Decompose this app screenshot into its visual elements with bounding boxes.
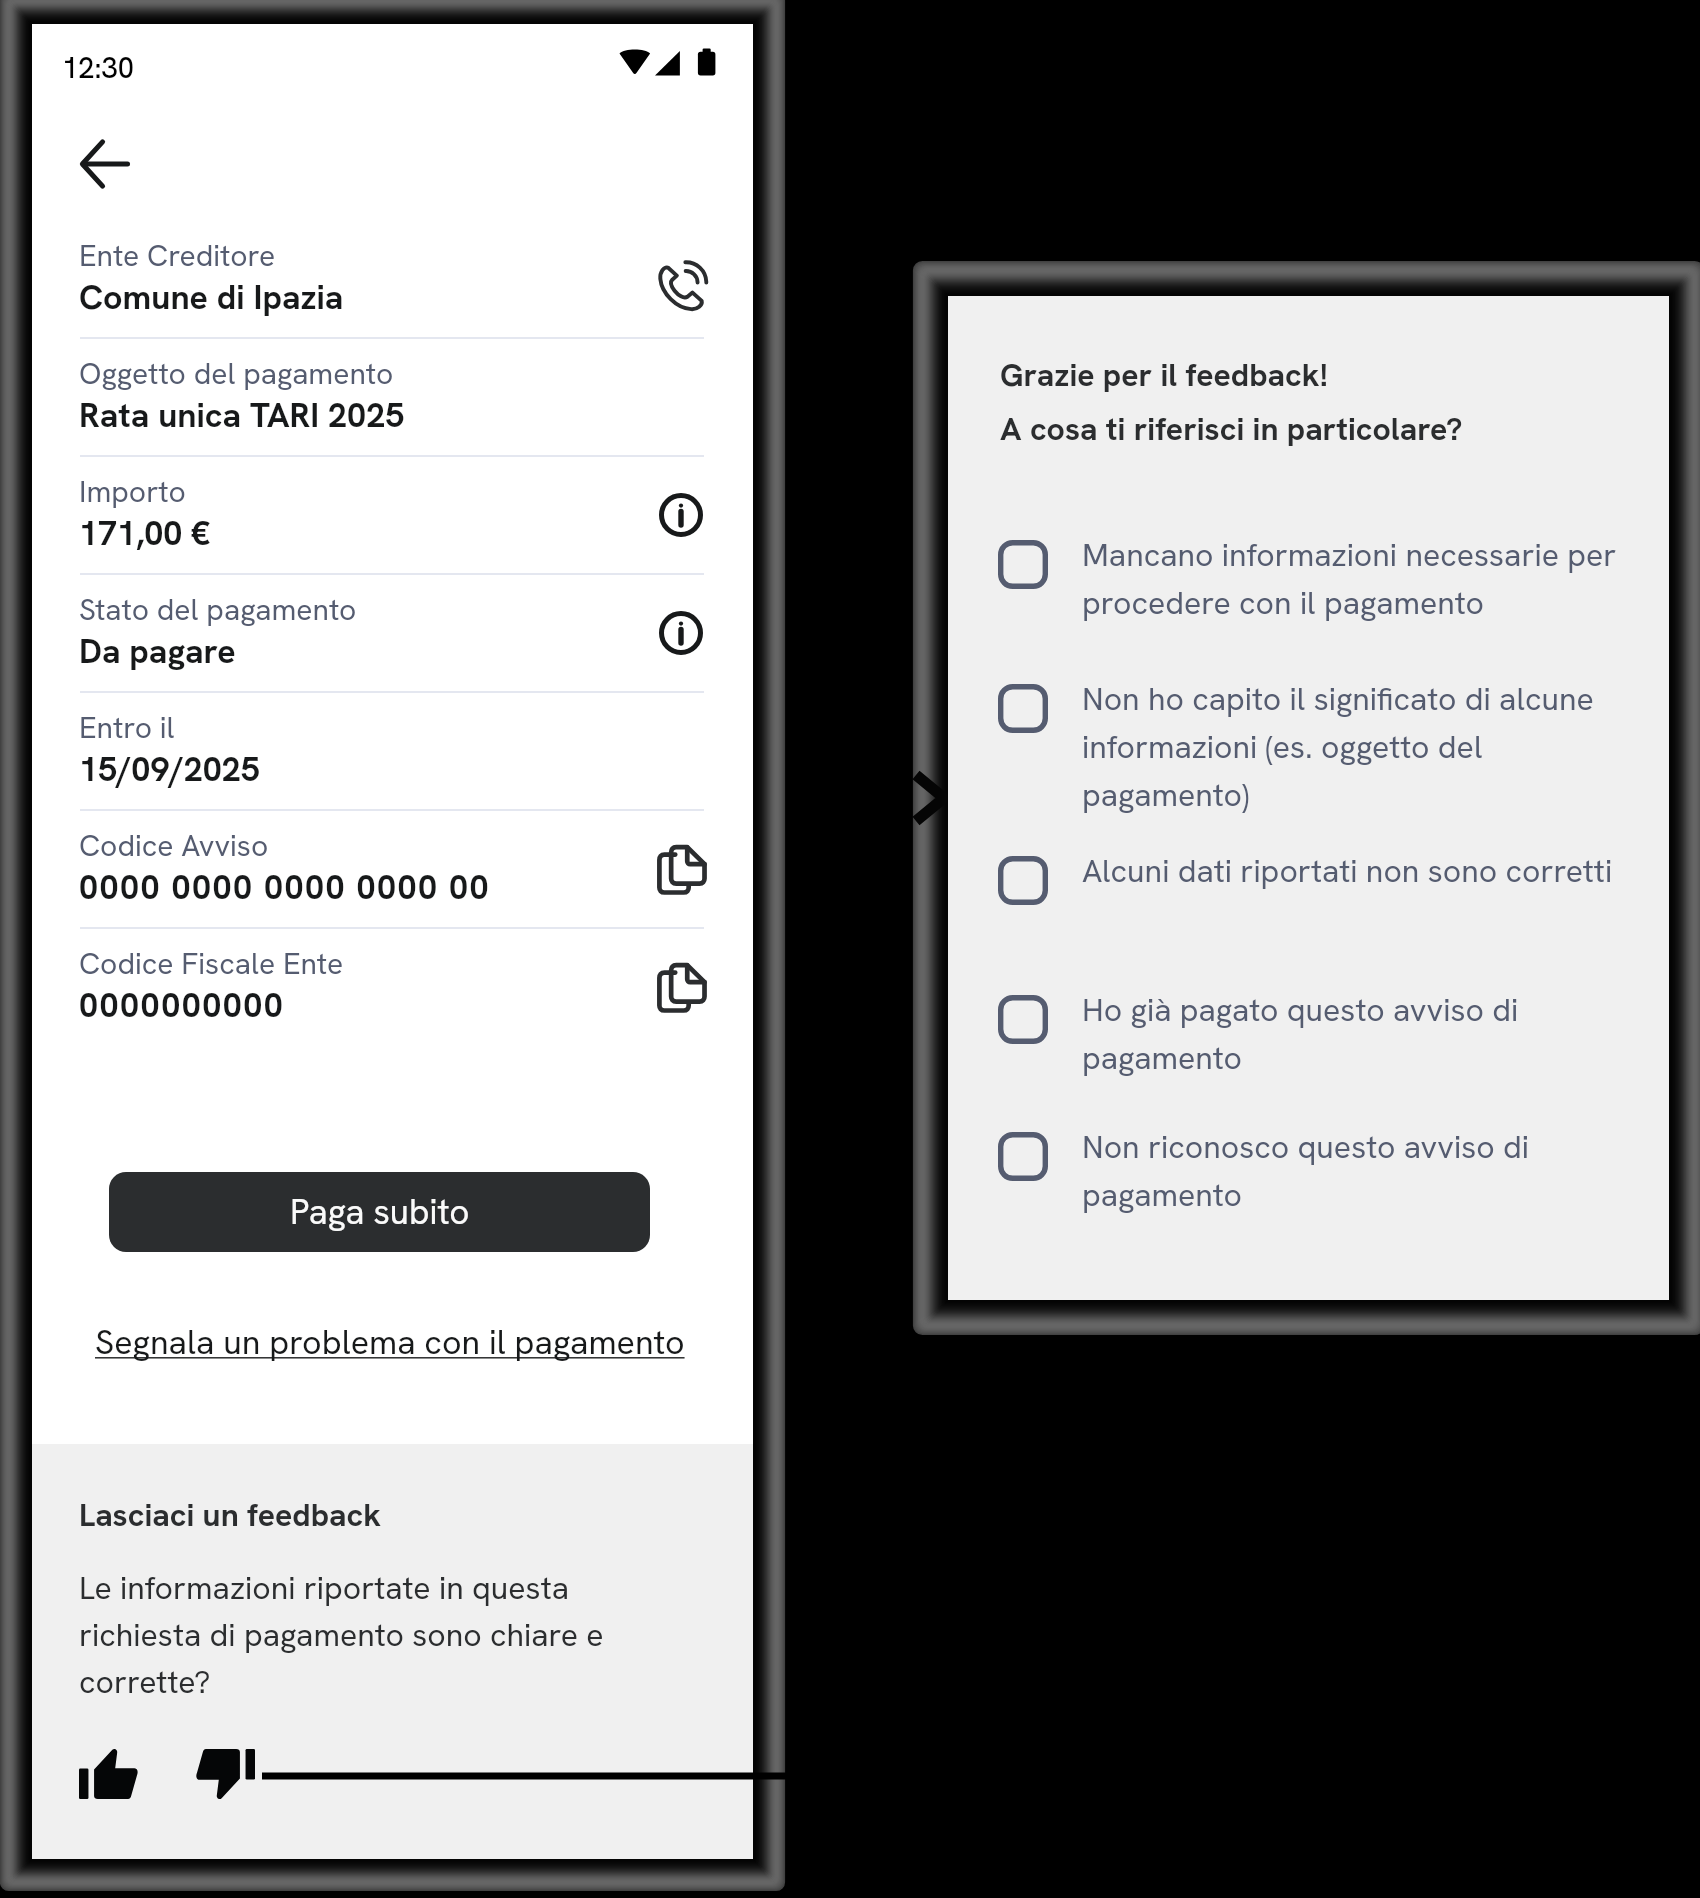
staticText: Paga subito xyxy=(290,1189,470,1235)
staticText: Importo xyxy=(79,472,186,511)
staticText: 15/09/2025 xyxy=(79,747,260,791)
button[interactable]: Informazioni xyxy=(645,597,717,669)
button[interactable]: Mancano informazioni necessarie per proc… xyxy=(998,540,1620,630)
staticText: Non ho capito il significato di alcune i… xyxy=(1082,678,1620,816)
button[interactable]: Informazioni xyxy=(645,479,717,551)
staticText: Codice Fiscale Ente xyxy=(79,944,344,983)
button[interactable]: Ho già pagato questo avviso di pagamento xyxy=(998,995,1620,1085)
staticText: Oggetto del pagamento xyxy=(79,354,394,393)
staticText: Comune di Ipazia xyxy=(79,275,344,319)
staticText: Codice Avviso xyxy=(79,826,269,865)
button[interactable]: Importo xyxy=(32,457,753,573)
staticText: Rata unica TARI 2025 xyxy=(79,393,405,437)
staticText: Grazie per il feedback! A cosa ti riferi… xyxy=(1000,354,1463,450)
button[interactable]: Non mi piace xyxy=(197,1744,267,1804)
staticText: Ente Creditore xyxy=(79,236,276,275)
staticText: 0000 0000 0000 0000 00 xyxy=(79,865,491,909)
staticText: 12:30 xyxy=(62,49,134,87)
staticText: Mancano informazioni necessarie per proc… xyxy=(1082,534,1620,624)
button[interactable]: Codice Fiscale Ente xyxy=(32,929,753,1045)
button[interactable]: Indietro xyxy=(64,130,152,212)
button[interactable]: Alcuni dati riportati non sono corretti xyxy=(998,856,1620,905)
staticText: Non riconosco questo avviso di pagamento xyxy=(1082,1126,1620,1216)
button[interactable]: Non ho capito il significato di alcune i… xyxy=(998,684,1620,822)
staticText: 0000000000 xyxy=(79,983,285,1027)
button[interactable]: Oggetto del pagamento xyxy=(32,339,753,455)
button[interactable]: Codice Avviso xyxy=(32,811,753,927)
staticText: Alcuni dati riportati non sono corretti xyxy=(1082,850,1613,892)
staticText: Le informazioni riportate in questa rich… xyxy=(79,1567,613,1703)
button[interactable]: Ente Creditore xyxy=(32,221,753,337)
button[interactable]: Stato del pagamento xyxy=(32,575,753,691)
button[interactable]: Copia xyxy=(645,833,717,905)
button[interactable]: Segnala un problema con il pagamento xyxy=(95,1320,685,1364)
button[interactable]: Chiama xyxy=(645,243,717,315)
staticText: 171,00 € xyxy=(79,511,211,555)
button[interactable]: Copia xyxy=(645,951,717,1023)
staticText: Stato del pagamento xyxy=(79,590,357,629)
button[interactable]: Paga subito xyxy=(109,1172,650,1252)
button[interactable]: Non riconosco questo avviso di pagamento xyxy=(998,1132,1620,1222)
staticText: Segnala un problema con il pagamento xyxy=(95,1320,685,1364)
button[interactable]: Entro il xyxy=(32,693,753,809)
staticText: Lasciaci un feedback xyxy=(79,1494,382,1536)
button[interactable]: Mi piace xyxy=(79,1744,149,1804)
staticText: Da pagare xyxy=(79,629,236,673)
staticText: Ho già pagato questo avviso di pagamento xyxy=(1082,989,1620,1079)
staticText: Entro il xyxy=(79,708,175,747)
